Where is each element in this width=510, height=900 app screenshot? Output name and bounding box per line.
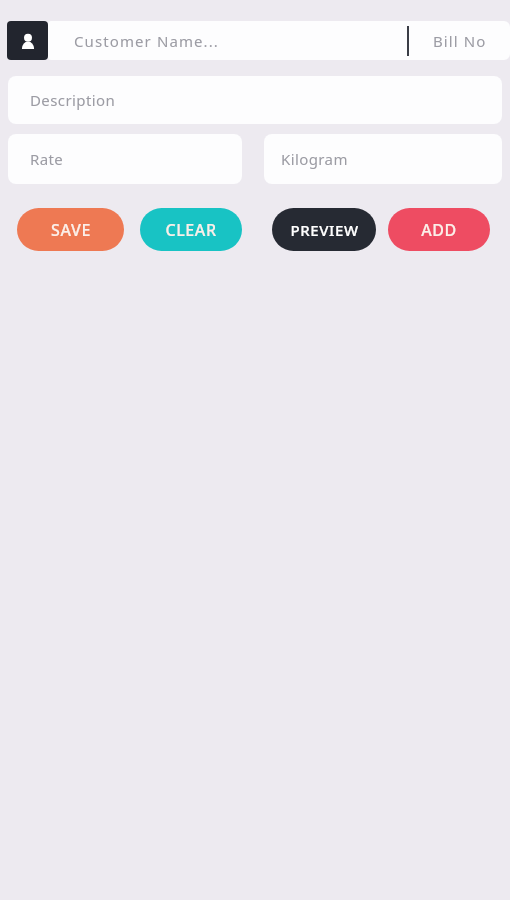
button[interactable]: Description bbox=[8, 76, 502, 124]
button[interactable]: CLEAR bbox=[140, 208, 242, 251]
staticText: SAVE bbox=[51, 219, 91, 241]
staticText: PREVIEW bbox=[290, 220, 359, 240]
button[interactable]: Kilogram bbox=[264, 134, 502, 184]
button[interactable]: ADD bbox=[388, 208, 490, 251]
staticText: Customer Name... bbox=[74, 31, 219, 51]
staticText: CLEAR bbox=[165, 219, 217, 241]
staticText: Description bbox=[30, 90, 116, 110]
button[interactable]: Rate bbox=[8, 134, 242, 184]
staticText: Bill No bbox=[433, 31, 487, 51]
button[interactable]: Customer Name... bbox=[48, 21, 407, 60]
button[interactable]: PREVIEW bbox=[272, 208, 376, 251]
staticText: ADD bbox=[421, 219, 457, 241]
button[interactable]: Select customer bbox=[7, 21, 48, 60]
button[interactable]: SAVE bbox=[17, 208, 124, 251]
button[interactable]: Bill No bbox=[409, 21, 510, 60]
staticText: Kilogram bbox=[281, 149, 348, 169]
staticText: Rate bbox=[30, 149, 64, 169]
